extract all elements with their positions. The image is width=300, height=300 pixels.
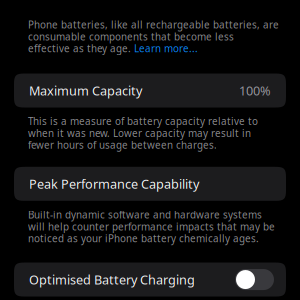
staticText: will help counter performance impacts th… — [28, 220, 275, 233]
button[interactable]: Maximum Capacity — [0, 73, 300, 107]
staticText: effective as they age. — [28, 42, 134, 55]
staticText: when it was new. Lower capacity may resu… — [28, 126, 251, 140]
staticText: Phone batteries, like all rechargeable b… — [28, 18, 279, 31]
staticText: Optimised Battery Charging — [29, 271, 195, 288]
staticText: noticed as your iPhone battery chemicall… — [28, 232, 259, 245]
button[interactable]: Optimised Battery Charging — [0, 262, 300, 296]
staticText: fewer hours of usage between charges. — [28, 138, 217, 152]
staticText: Maximum Capacity — [29, 82, 142, 99]
staticText: Peak Performance Capability — [29, 175, 199, 192]
button[interactable]: Peak Performance Capability — [0, 167, 300, 201]
staticText: 100% — [239, 82, 271, 99]
staticText: This is a measure of battery capacity re… — [28, 114, 258, 128]
staticText: consumable components that become less — [28, 30, 234, 43]
staticText: Built-in dynamic software and hardware s… — [28, 208, 262, 221]
staticText: Learn more... — [134, 42, 198, 55]
button[interactable]: Learn more... — [134, 42, 198, 55]
